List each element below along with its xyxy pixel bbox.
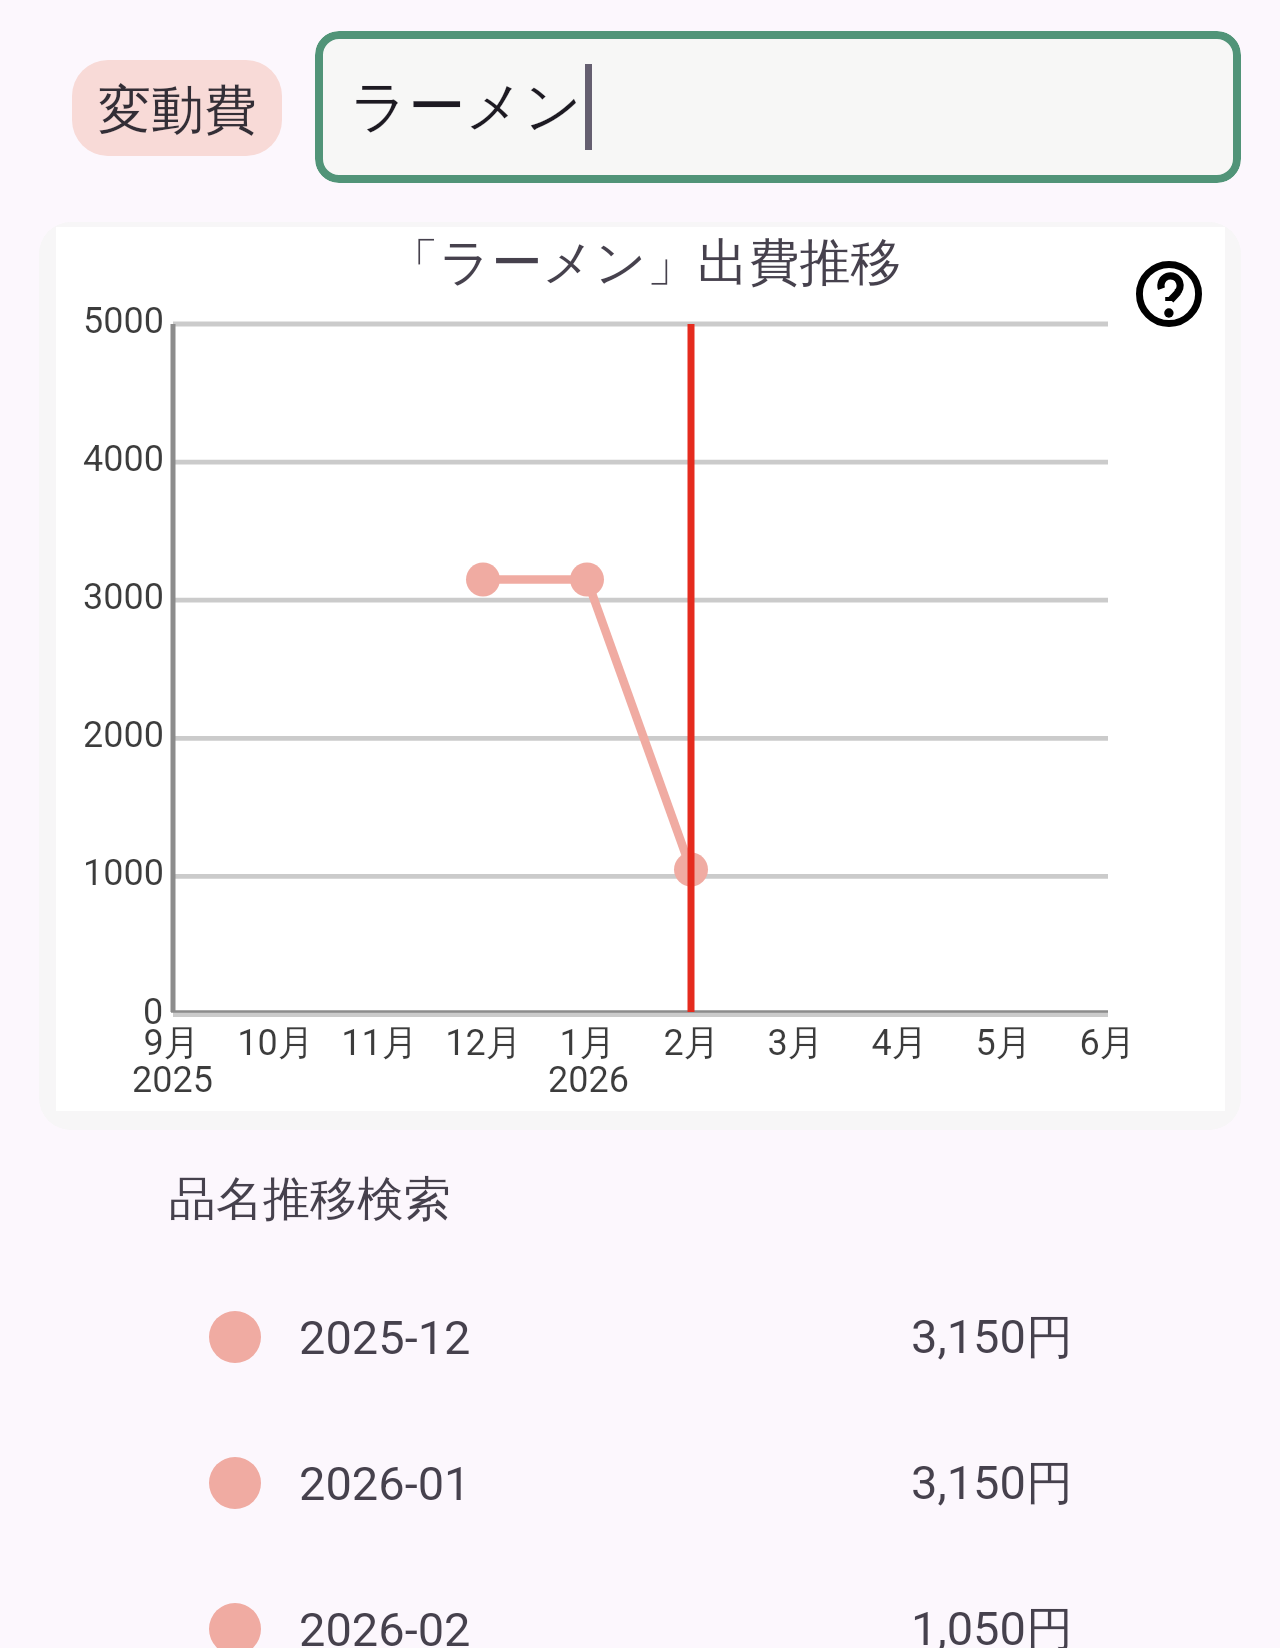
button[interactable]: Help — [1136, 261, 1202, 327]
staticText: 12月 — [445, 1020, 522, 1065]
staticText: 3月 — [767, 1020, 824, 1065]
staticText: 2月 — [663, 1020, 720, 1065]
staticText: 11月 — [341, 1020, 418, 1065]
button[interactable]: 変動費 — [72, 60, 282, 156]
staticText: 2026-02 — [299, 1602, 471, 1648]
staticText: 0 — [143, 991, 164, 1033]
button[interactable]: ラーメン — [315, 31, 1241, 183]
staticText: 5月 — [975, 1020, 1032, 1065]
staticText: 品名推移検索 — [169, 1170, 451, 1229]
staticText: 1000 — [83, 852, 164, 894]
button[interactable]: 2026-01 — [148, 1435, 1073, 1531]
staticText: 4月 — [871, 1020, 928, 1065]
staticText: 6月 — [1079, 1020, 1136, 1065]
staticText: 10月 — [237, 1020, 314, 1065]
button[interactable]: 2026-02 — [148, 1581, 1073, 1648]
staticText: 2025 — [132, 1059, 213, 1101]
staticText: 3,150円 — [911, 1308, 1073, 1367]
staticText: 3,150円 — [911, 1454, 1073, 1513]
staticText: 2025-12 — [299, 1310, 471, 1365]
staticText: 3000 — [83, 576, 164, 618]
staticText: 1,050円 — [911, 1600, 1073, 1648]
staticText: 2026-01 — [299, 1456, 471, 1511]
staticText: 2026 — [548, 1059, 629, 1101]
staticText: 9月 — [143, 1020, 200, 1065]
staticText: 2000 — [83, 714, 164, 756]
staticText: 5000 — [83, 300, 164, 342]
button[interactable]: 2025-12 — [148, 1289, 1073, 1385]
staticText: 「ラーメン」出費推移 — [388, 231, 902, 295]
staticText: 1月 — [559, 1020, 616, 1065]
staticText: 4000 — [83, 438, 164, 480]
staticText: 変動費 — [98, 77, 257, 144]
staticText: ラーメン — [350, 71, 583, 143]
